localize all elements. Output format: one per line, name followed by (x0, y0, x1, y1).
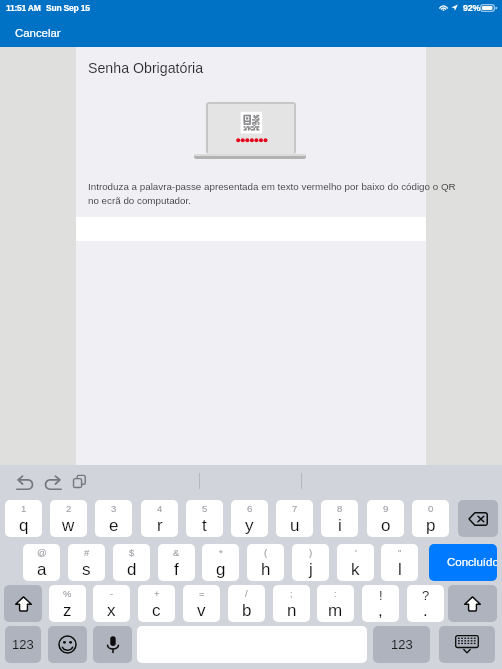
staticText: ; (290, 588, 293, 599)
staticText: e (109, 516, 119, 535)
staticText: j (309, 560, 313, 579)
staticText: r (157, 516, 163, 535)
button[interactable]: Emoji (48, 626, 87, 663)
button[interactable]: Cancelar (6, 20, 72, 47)
staticText: 7 (292, 503, 298, 514)
staticText: : (334, 588, 337, 599)
button[interactable]: Concluído (429, 544, 497, 581)
staticText: 2 (66, 503, 72, 514)
button[interactable]: 0 (412, 500, 449, 537)
staticText: s (82, 560, 91, 579)
button[interactable]: 1 (5, 500, 42, 537)
staticText: b (242, 601, 252, 620)
button[interactable]: Undo (9, 470, 39, 494)
staticText: q (19, 516, 29, 535)
button[interactable]: 9 (367, 500, 404, 537)
staticText: i (338, 516, 342, 535)
staticText: k (351, 560, 360, 579)
staticText: " (398, 547, 402, 558)
staticText: + (154, 588, 160, 599)
staticText: % (63, 588, 72, 599)
button[interactable]: Dictation (93, 626, 132, 663)
button[interactable]: Hide keyboard (439, 626, 495, 663)
staticText: , (378, 601, 383, 620)
button[interactable]: + (138, 585, 175, 622)
button[interactable]: 2 (50, 500, 87, 537)
button[interactable]: 123 (5, 626, 41, 663)
staticText: 123 (391, 637, 413, 652)
button[interactable]: 3 (95, 500, 132, 537)
staticText: 9 (383, 503, 389, 514)
staticText: v (197, 601, 206, 620)
staticText: p (426, 516, 436, 535)
button[interactable]: 4 (141, 500, 178, 537)
button[interactable]: " (381, 544, 418, 581)
staticText: 92% (463, 3, 481, 13)
button[interactable]: 123 (373, 626, 430, 663)
staticText: 4 (157, 503, 163, 514)
button[interactable]: 5 (186, 500, 223, 537)
staticText: ? (422, 588, 430, 603)
button[interactable]: ! (362, 585, 399, 622)
button[interactable]: 8 (321, 500, 358, 537)
staticText: 123 (12, 637, 34, 652)
staticText: Introduza a palavra-passe apresentada em… (88, 179, 468, 207)
button[interactable]: 6 (231, 500, 268, 537)
button[interactable]: : (317, 585, 354, 622)
button[interactable]: @ (23, 544, 60, 581)
staticText: z (63, 601, 72, 620)
button[interactable]: = (183, 585, 220, 622)
staticText: ) (309, 547, 313, 558)
staticText: ( (264, 547, 268, 558)
staticText: 11:51 AM (6, 3, 41, 12)
staticText: . (423, 601, 428, 620)
staticText: c (152, 601, 161, 620)
button[interactable]: Paste (65, 469, 93, 493)
button[interactable]: & (158, 544, 195, 581)
staticText: d (127, 560, 137, 579)
button[interactable]: 7 (276, 500, 313, 537)
staticText: 6 (247, 503, 253, 514)
staticText: 1 (21, 503, 27, 514)
button[interactable]: * (202, 544, 239, 581)
staticText: 3 (111, 503, 117, 514)
staticText: w (62, 516, 75, 535)
staticText: y (245, 516, 254, 535)
staticText: ' (355, 547, 357, 558)
staticText: - (110, 588, 114, 599)
staticText: 8 (337, 503, 343, 514)
button[interactable]: $ (113, 544, 150, 581)
button[interactable]: Redo (38, 470, 68, 494)
button[interactable]: Shift (448, 585, 497, 622)
staticText: & (173, 547, 180, 558)
button[interactable]: - (93, 585, 130, 622)
staticText: l (398, 560, 402, 579)
staticText: Senha Obrigatória (88, 60, 204, 76)
button[interactable]: ) (292, 544, 329, 581)
staticText: 0 (428, 503, 434, 514)
staticText: * (219, 547, 223, 558)
staticText: # (84, 547, 90, 558)
button[interactable]: / (228, 585, 265, 622)
staticText: $ (129, 547, 135, 558)
staticText: a (37, 560, 47, 579)
button[interactable]: ' (337, 544, 374, 581)
staticText: Sun Sep 15 (46, 3, 90, 12)
button[interactable]: ? (407, 585, 444, 622)
staticText: g (216, 560, 226, 579)
staticText: = (199, 588, 205, 599)
staticText: ! (379, 588, 383, 603)
button[interactable]: ( (247, 544, 284, 581)
staticText: x (107, 601, 116, 620)
staticText: h (261, 560, 271, 579)
button[interactable]: % (49, 585, 86, 622)
button[interactable]: Shift (4, 585, 42, 622)
button[interactable]: # (68, 544, 105, 581)
button[interactable]: ; (273, 585, 310, 622)
button[interactable]: Backspace (458, 500, 498, 537)
staticText: n (287, 601, 297, 620)
staticText: 5 (202, 503, 208, 514)
staticText: Cancelar (15, 27, 61, 40)
